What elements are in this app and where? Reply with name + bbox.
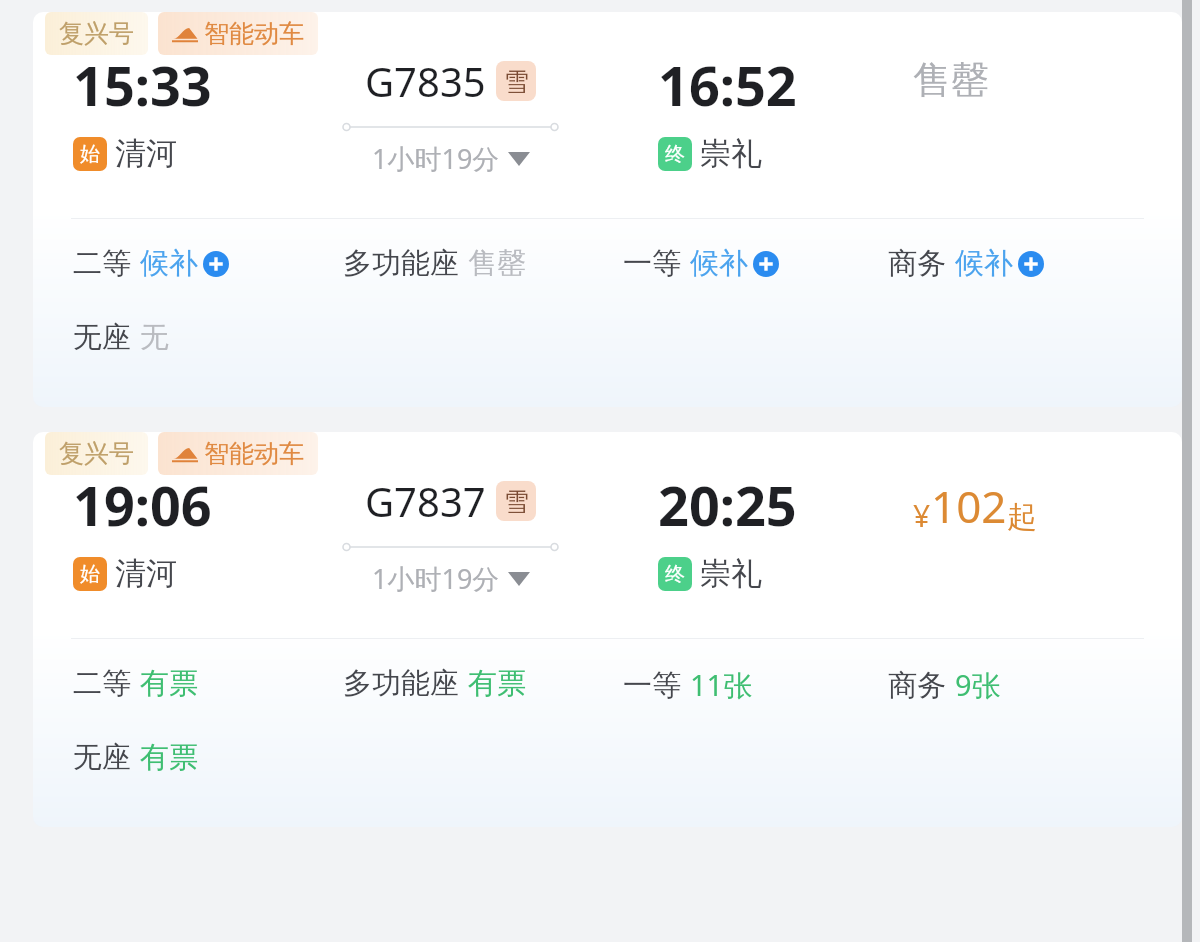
staticText: 清河	[115, 554, 177, 593]
staticText: 智能动车	[204, 438, 304, 469]
staticText: 无座	[73, 739, 131, 776]
staticText: 20:25	[658, 468, 797, 542]
staticText: 商务	[888, 667, 946, 704]
button[interactable]: 复兴号	[59, 18, 134, 49]
staticText: 始	[80, 142, 100, 167]
button[interactable]: 复兴号	[59, 438, 134, 469]
staticText: 多功能座	[343, 665, 459, 702]
staticText: 始	[80, 562, 100, 587]
button[interactable]: 智能动车	[172, 18, 304, 49]
staticText: 一等	[623, 667, 681, 704]
staticText: 9张	[955, 665, 1001, 705]
staticText: 雪	[504, 66, 529, 97]
staticText: G7835	[365, 54, 486, 108]
staticText: 复兴号	[59, 18, 134, 49]
other: 候补加购	[203, 251, 229, 277]
staticText: 16:52	[658, 48, 797, 122]
staticText: 起	[1007, 498, 1037, 536]
other: 候补加购	[753, 251, 779, 277]
staticText: 终	[665, 562, 685, 587]
staticText: 多功能座	[343, 245, 459, 282]
staticText: 崇礼	[700, 554, 762, 593]
staticText: G7837	[365, 474, 486, 528]
staticText: 复兴号	[59, 438, 134, 469]
staticText: 19:06	[73, 468, 212, 542]
staticText: 11张	[690, 665, 753, 705]
staticText: 有票	[468, 665, 526, 702]
button[interactable]: 智能动车	[172, 438, 304, 469]
staticText: 15:33	[73, 48, 212, 122]
staticText: 候补	[955, 245, 1013, 282]
staticText: 二等	[73, 245, 131, 282]
staticText: 售罄	[468, 245, 526, 282]
staticText: 无座	[73, 319, 131, 356]
staticText: ¥	[913, 495, 931, 536]
staticText: 有票	[140, 665, 198, 702]
staticText: 智能动车	[204, 18, 304, 49]
staticText: 一等	[623, 245, 681, 282]
staticText: 清河	[115, 134, 177, 173]
staticText: 售罄	[913, 56, 989, 104]
button[interactable]: 19:06	[33, 432, 1182, 827]
staticText: 候补	[690, 245, 748, 282]
other: 候补加购	[1018, 251, 1044, 277]
button[interactable]: 15:33	[33, 12, 1182, 407]
staticText: 雪	[504, 486, 529, 517]
staticText: 崇礼	[700, 134, 762, 173]
staticText: 二等	[73, 665, 131, 702]
staticText: 商务	[888, 245, 946, 282]
staticText: 1小时19分	[372, 140, 500, 177]
staticText: 102	[931, 476, 1007, 536]
button[interactable]: 候补	[955, 245, 1044, 282]
staticText: 1小时19分	[372, 560, 500, 597]
staticText: 终	[665, 142, 685, 167]
staticText: 有票	[140, 739, 198, 776]
staticText: 候补	[140, 245, 198, 282]
button[interactable]: 候补	[140, 245, 229, 282]
staticText: 无	[140, 319, 169, 356]
button[interactable]: 候补	[690, 245, 779, 282]
